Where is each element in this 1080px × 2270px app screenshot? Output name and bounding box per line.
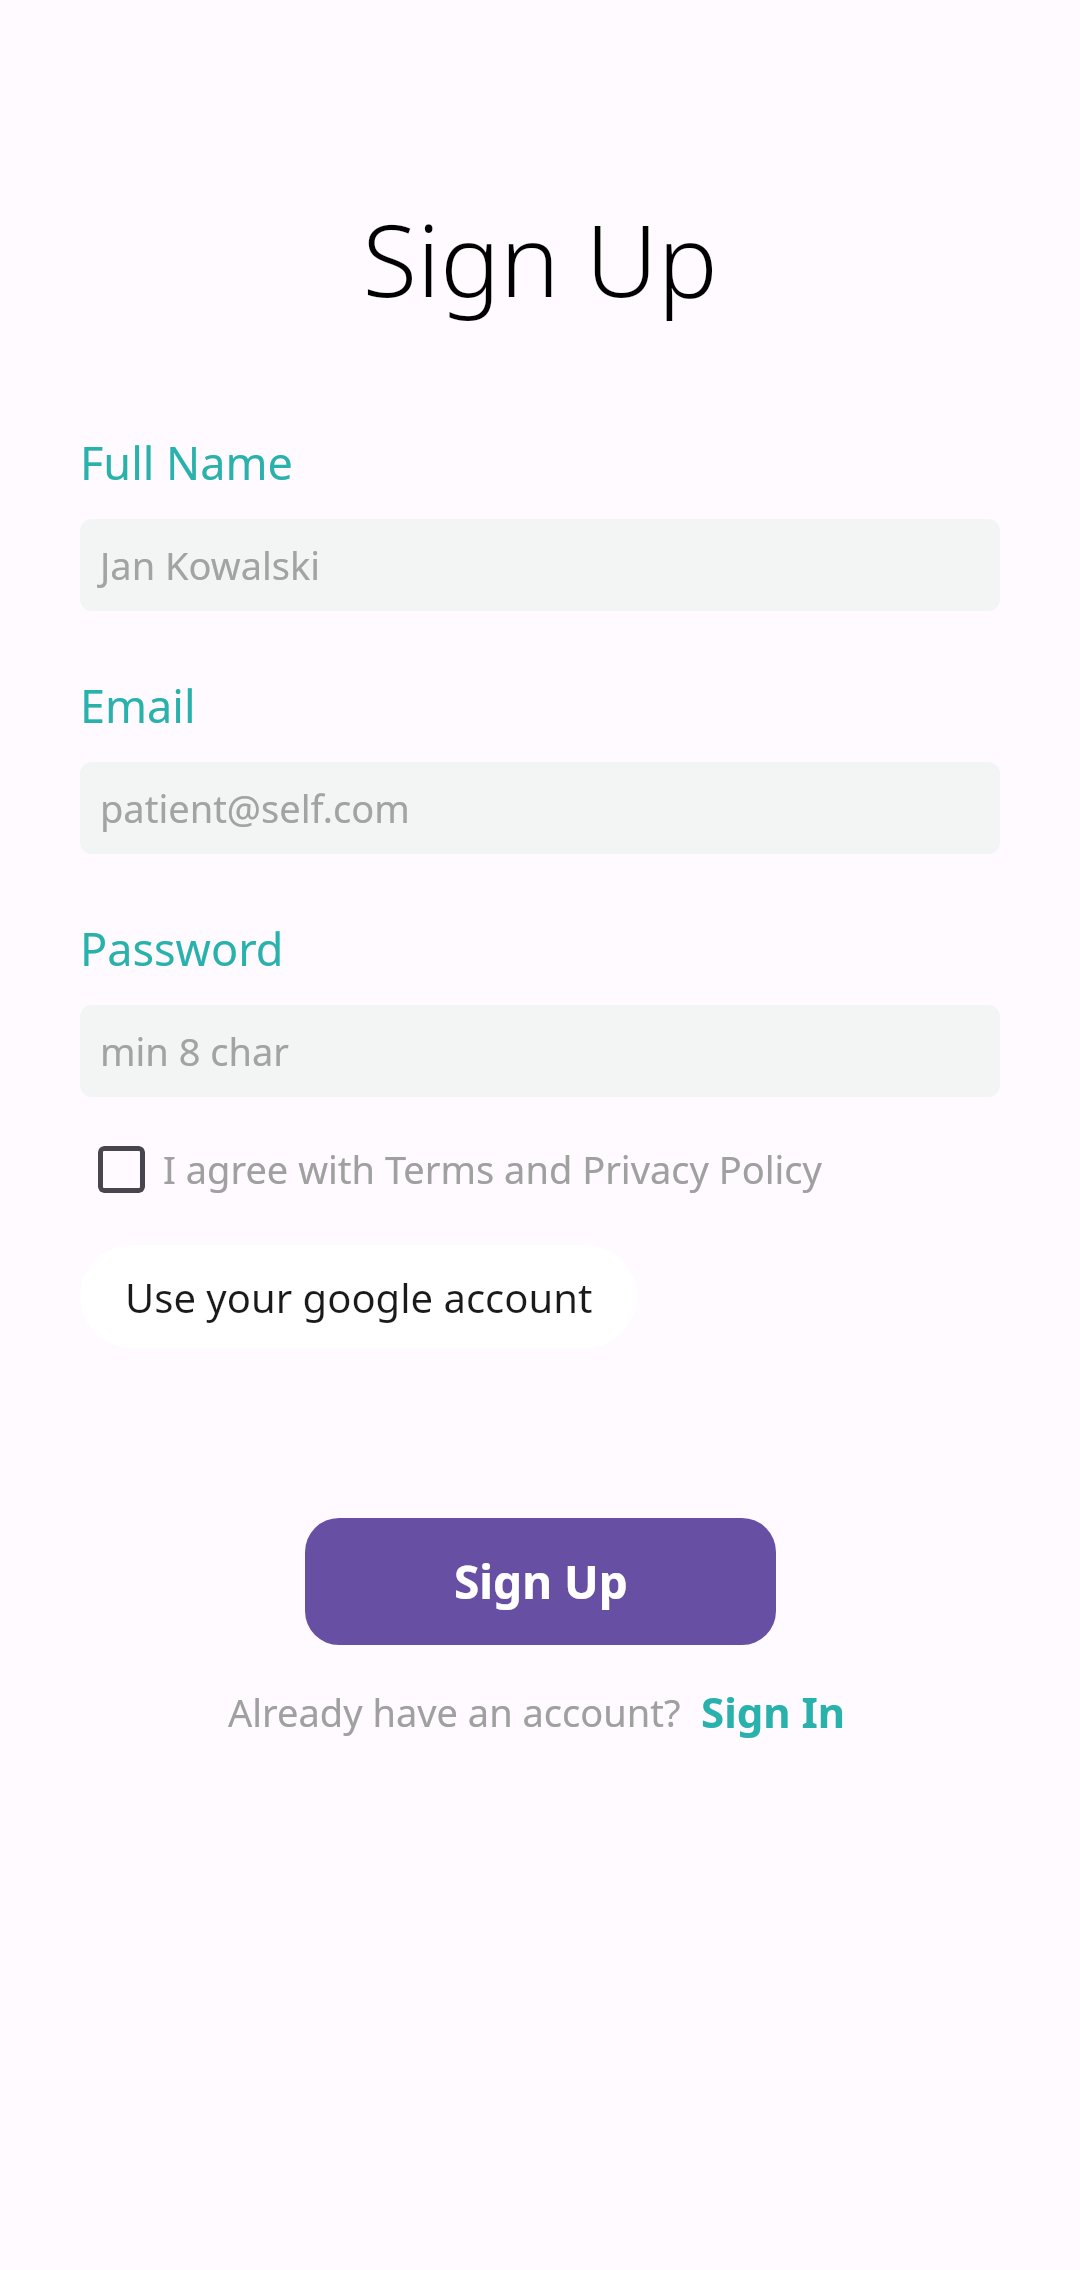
button[interactable]: Agree with Terms and Privacy Policy [80,1135,1000,1203]
staticText: Sign Up [454,1550,628,1613]
button[interactable]: Sign Up [305,1518,776,1645]
staticText: Use your google account [125,1270,593,1324]
button[interactable]: min 8 char [80,1005,1000,1097]
button[interactable]: Sign In [681,1677,852,1746]
other: Agree with Terms and Privacy Policy [98,1146,145,1193]
staticText: I agree with Terms and Privacy Policy [163,1143,822,1195]
staticText: Sign Up [0,190,1080,326]
staticText: Email [80,675,196,736]
staticText: Password [80,918,284,979]
button[interactable]: Jan Kowalski [80,519,1000,611]
staticText: Full Name [80,432,293,493]
button[interactable]: patient@self.com [80,762,1000,854]
staticText: Sign In [701,1683,846,1740]
staticText: min 8 char [100,1025,290,1077]
staticText: patient@self.com [100,782,410,834]
staticText: Jan Kowalski [100,539,321,591]
staticText: Already have an account? [228,1686,681,1738]
button[interactable]: Use your google account [80,1245,637,1348]
